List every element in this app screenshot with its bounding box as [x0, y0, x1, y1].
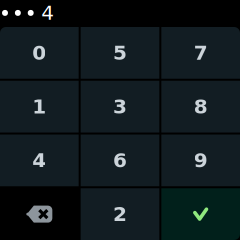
button[interactable]: 1: [0, 81, 79, 133]
staticText: 8: [194, 95, 208, 118]
staticText: 0: [32, 41, 46, 64]
staticText: 9: [194, 149, 208, 172]
staticText: 6: [113, 149, 127, 172]
button[interactable]: Delete: [0, 188, 79, 240]
button[interactable]: 2: [81, 188, 159, 240]
staticText: 1: [32, 95, 46, 118]
staticText: 7: [194, 41, 208, 64]
button[interactable]: 5: [81, 27, 159, 79]
staticText: 2: [113, 202, 127, 226]
staticText: 4: [41, 1, 54, 25]
button[interactable]: 6: [81, 134, 159, 186]
button[interactable]: 0: [0, 27, 79, 79]
staticText: 5: [113, 41, 127, 64]
button[interactable]: 9: [161, 134, 240, 186]
button[interactable]: 4: [0, 134, 79, 186]
staticText: 3: [113, 95, 127, 118]
staticText: 4: [32, 149, 46, 172]
button[interactable]: 3: [81, 81, 159, 133]
button[interactable]: 7: [161, 27, 240, 79]
button[interactable]: 8: [161, 81, 240, 133]
button[interactable]: Confirm passcode: [161, 188, 240, 240]
